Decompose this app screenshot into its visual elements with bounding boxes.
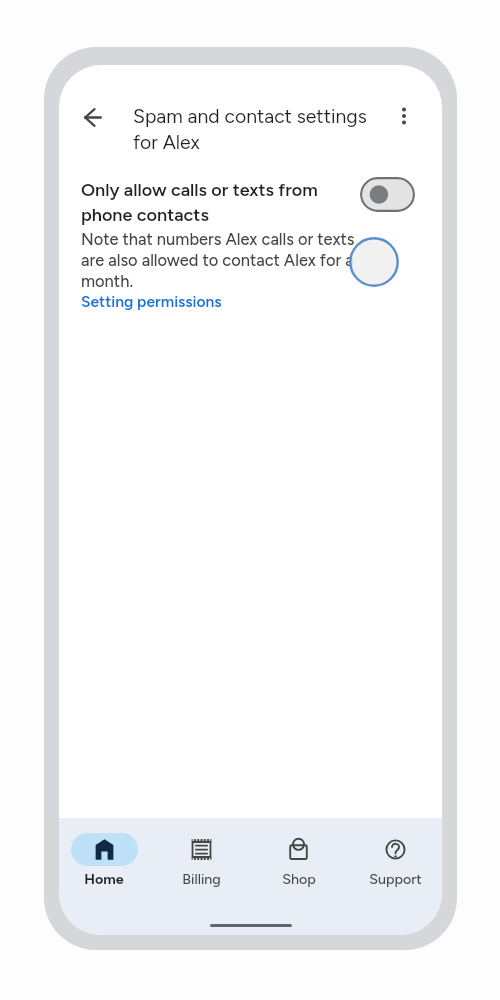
staticText: Note that numbers Alex calls or texts ar… bbox=[81, 229, 366, 291]
staticText: Setting permissions bbox=[81, 292, 222, 311]
button[interactable]: Setting permissions bbox=[81, 292, 222, 311]
staticText: Shop bbox=[282, 870, 316, 887]
button[interactable]: Shop bbox=[250, 833, 347, 887]
button[interactable]: Back bbox=[72, 96, 114, 138]
staticText: Billing bbox=[182, 870, 221, 887]
staticText: Spam and contact settings for Alex bbox=[133, 105, 378, 154]
button[interactable]: Only allow calls or texts from phone con… bbox=[360, 177, 415, 212]
button[interactable]: Support bbox=[347, 833, 442, 887]
button[interactable]: More options bbox=[384, 96, 424, 136]
staticText: Support bbox=[369, 870, 422, 887]
staticText: Home bbox=[84, 870, 124, 887]
button[interactable]: Billing bbox=[153, 833, 250, 887]
staticText: Only allow calls or texts from phone con… bbox=[81, 179, 329, 226]
button[interactable]: Home bbox=[59, 833, 153, 887]
